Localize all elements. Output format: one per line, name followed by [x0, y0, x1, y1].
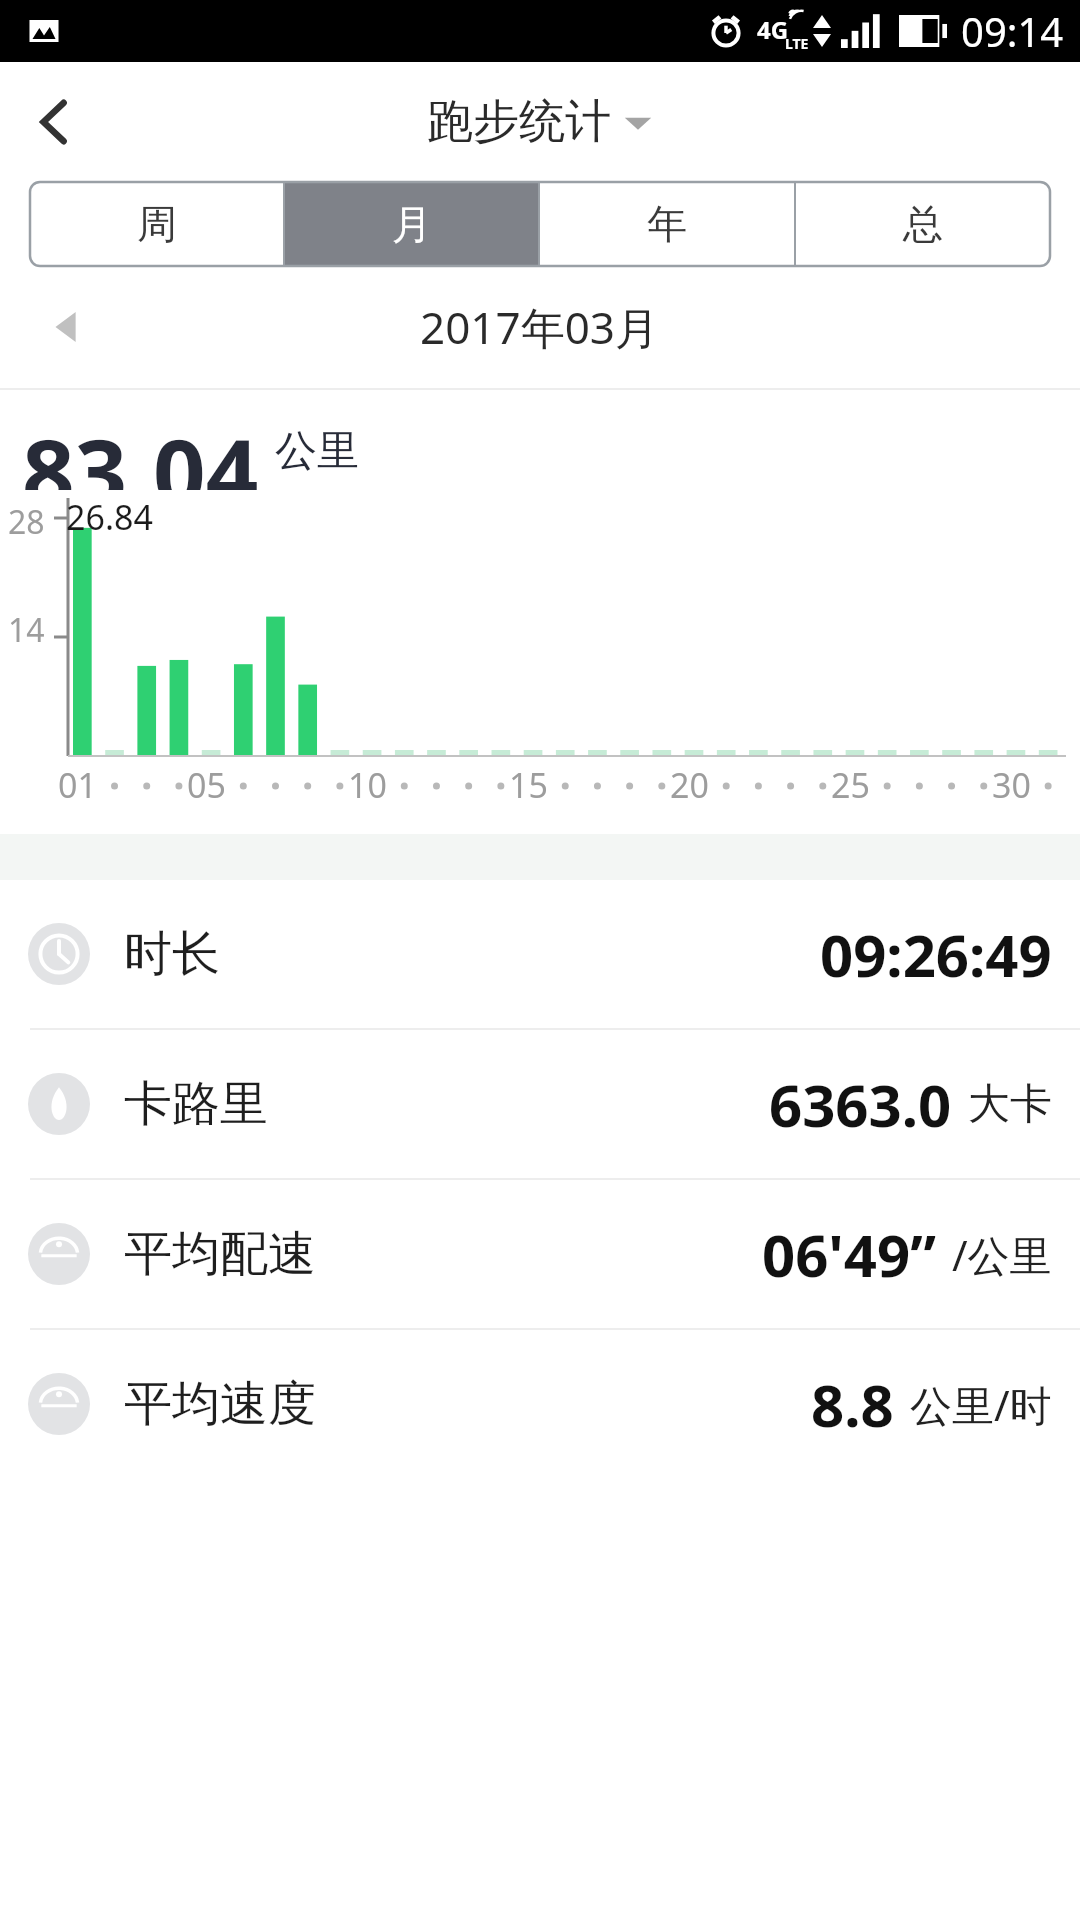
- button[interactable]: Back: [0, 67, 110, 177]
- staticText: 周: [137, 199, 177, 249]
- button[interactable]: 周: [30, 182, 283, 266]
- staticText: LTE: [785, 34, 809, 53]
- staticText: /公里: [952, 1226, 1052, 1283]
- button[interactable]: 平均配速: [0, 1180, 1080, 1328]
- staticText: 跑步统计: [427, 93, 611, 151]
- staticText: 20: [670, 762, 709, 808]
- staticText: 06'49”: [762, 1215, 936, 1294]
- button[interactable]: Previous month: [32, 292, 102, 362]
- staticText: 4G: [757, 13, 789, 46]
- staticText: 2017年03月: [420, 297, 660, 357]
- staticText: 10: [348, 762, 387, 808]
- staticText: 卡路里: [124, 1074, 268, 1134]
- staticText: 月: [392, 199, 432, 249]
- staticText: 83.04: [22, 408, 259, 490]
- staticText: 28: [8, 500, 45, 544]
- button[interactable]: 卡路里: [0, 1030, 1080, 1178]
- staticText: 14: [8, 608, 45, 652]
- staticText: 01: [58, 762, 97, 808]
- staticText: 09:14: [961, 4, 1064, 58]
- staticText: 30: [992, 762, 1031, 808]
- staticText: 05: [187, 762, 226, 808]
- staticText: 09:26:49: [820, 915, 1052, 994]
- button[interactable]: 平均速度: [0, 1330, 1080, 1478]
- staticText: 25: [831, 762, 870, 808]
- button[interactable]: 时长: [0, 880, 1080, 1028]
- staticText: 公里/时: [910, 1376, 1052, 1433]
- button[interactable]: 跑步统计: [427, 93, 653, 151]
- button[interactable]: 年: [540, 182, 794, 266]
- staticText: 26.84: [66, 494, 153, 540]
- staticText: 公里: [275, 425, 359, 478]
- staticText: 6363.0: [769, 1065, 952, 1144]
- staticText: 15: [509, 762, 548, 808]
- staticText: 时长: [124, 924, 220, 984]
- staticText: 平均配速: [124, 1224, 316, 1284]
- button[interactable]: 月: [285, 182, 538, 266]
- staticText: 8.8: [811, 1365, 894, 1444]
- staticText: 平均速度: [124, 1374, 316, 1434]
- button[interactable]: 总: [796, 182, 1050, 266]
- staticText: 总: [903, 199, 943, 249]
- staticText: 大卡: [968, 1078, 1052, 1131]
- staticText: 年: [647, 199, 687, 249]
